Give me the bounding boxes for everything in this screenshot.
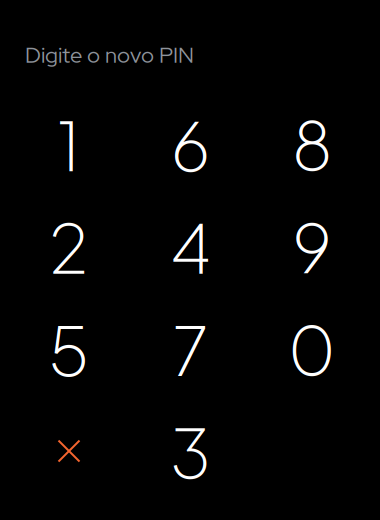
staticText: Digite o novo PIN — [25, 40, 194, 69]
button[interactable]: 0 — [251, 298, 373, 400]
button[interactable]: Apagar — [8, 400, 130, 502]
staticText: 0 — [288, 307, 336, 391]
staticText: 2 — [49, 204, 88, 288]
button[interactable]: 2 — [8, 195, 130, 298]
staticText: 1 — [57, 102, 80, 186]
button[interactable]: 5 — [8, 298, 130, 400]
button[interactable]: 8 — [251, 93, 373, 195]
staticText: 6 — [171, 102, 210, 186]
button[interactable]: 9 — [251, 195, 373, 298]
button[interactable]: 1 — [8, 93, 130, 195]
button[interactable]: 7 — [130, 298, 251, 400]
button[interactable]: 6 — [130, 93, 251, 195]
staticText: 7 — [173, 307, 208, 391]
staticText: 9 — [292, 204, 331, 288]
button[interactable]: 3 — [130, 400, 251, 502]
staticText: 4 — [170, 204, 210, 288]
staticText: 3 — [170, 409, 210, 493]
staticText: 5 — [48, 307, 89, 391]
button[interactable]: 4 — [130, 195, 251, 298]
staticText: 8 — [292, 102, 332, 186]
